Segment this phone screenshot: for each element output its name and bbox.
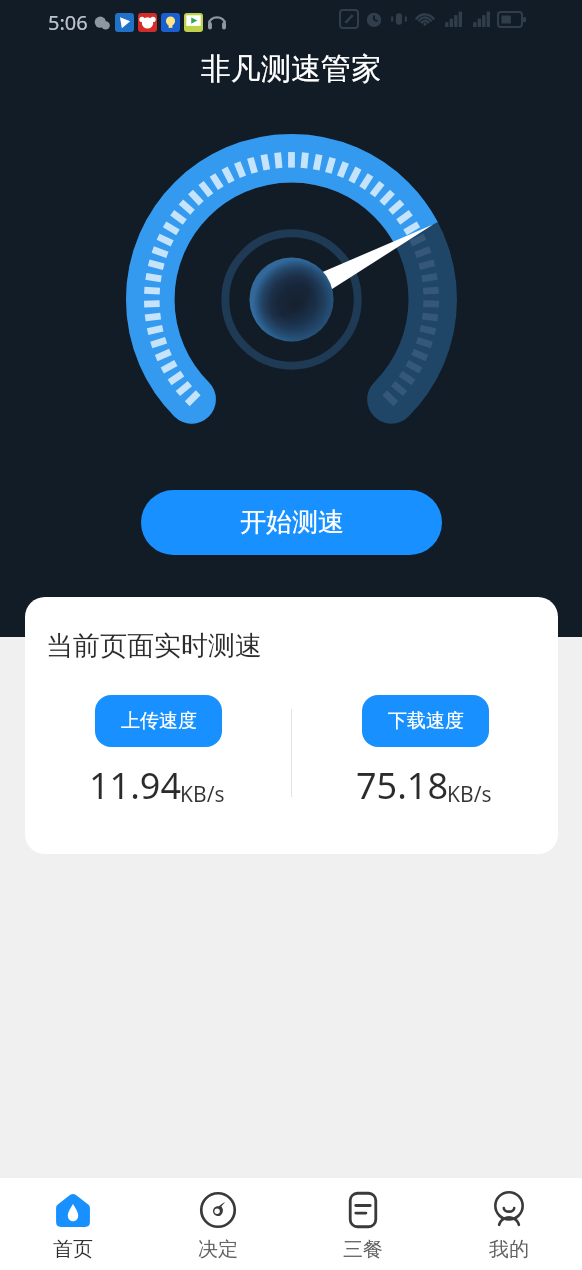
staticText: 三餐: [343, 1237, 383, 1262]
staticText: 5:06: [48, 9, 88, 36]
button[interactable]: 决定: [145, 1178, 290, 1270]
button[interactable]: 首页: [0, 1178, 145, 1270]
button[interactable]: 下载速度: [362, 695, 489, 747]
staticText: 非凡测速管家: [201, 50, 381, 88]
staticText: 下载速度: [388, 709, 464, 733]
button[interactable]: 三餐: [290, 1178, 436, 1270]
staticText: KB/s: [180, 780, 225, 809]
staticText: 75.18: [356, 761, 449, 810]
button[interactable]: 上传速度: [95, 695, 222, 747]
button[interactable]: 我的: [436, 1178, 582, 1270]
staticText: 开始测速: [240, 506, 344, 539]
staticText: 11.94: [89, 761, 182, 810]
staticText: 上传速度: [121, 709, 197, 733]
staticText: 首页: [53, 1237, 93, 1262]
button[interactable]: 开始测速: [141, 490, 442, 555]
staticText: KB/s: [447, 780, 492, 809]
staticText: 决定: [198, 1237, 238, 1262]
staticText: 当前页面实时测速: [46, 629, 262, 663]
staticText: 我的: [489, 1237, 529, 1262]
